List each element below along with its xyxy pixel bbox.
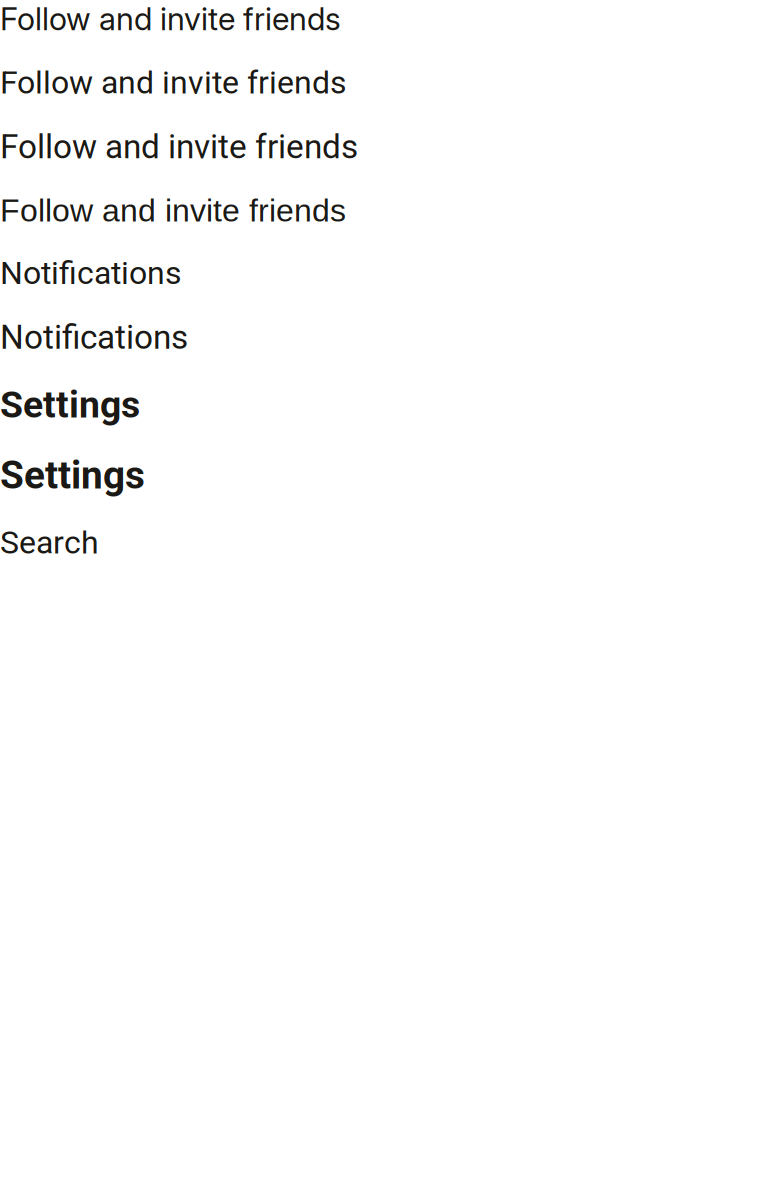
staticText: Follow and invite friends	[0, 64, 347, 101]
staticText: Follow and invite friends	[0, 0, 341, 38]
staticText: Search	[0, 524, 99, 561]
staticText: Settings	[0, 383, 140, 426]
staticText: Notifications	[0, 254, 182, 292]
staticText: Follow and invite friends	[0, 127, 358, 166]
staticText: Follow and invite friends	[0, 192, 346, 228]
staticText: Settings	[0, 452, 145, 498]
staticText: Notifications	[0, 318, 188, 357]
